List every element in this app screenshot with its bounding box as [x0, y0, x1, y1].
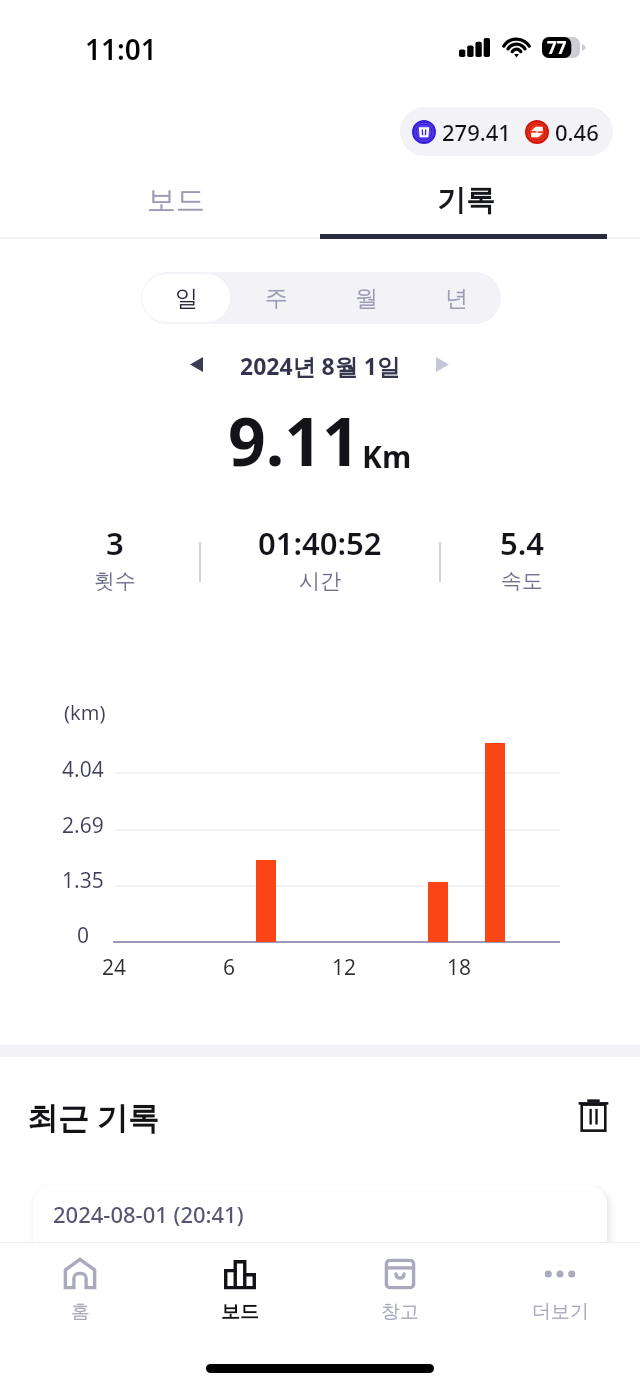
staticText: 홈: [71, 1300, 90, 1324]
staticText: 2.69: [62, 811, 104, 840]
button[interactable]: 보드: [160, 1243, 320, 1337]
staticText: 더보기: [532, 1300, 589, 1324]
staticText: 보드: [147, 182, 205, 219]
button[interactable]: 일: [142, 274, 230, 322]
staticText: 9.11: [228, 395, 360, 485]
staticText: 6: [223, 953, 236, 982]
staticText: 속도: [501, 568, 543, 594]
button[interactable]: Delete records: [570, 1092, 616, 1138]
staticText: 2024년 8월 1일: [240, 350, 400, 381]
staticText: 4.04: [62, 755, 104, 784]
staticText: 12: [332, 953, 357, 982]
staticText: Km: [362, 436, 412, 477]
staticText: 주: [265, 284, 288, 313]
button[interactable]: 월: [322, 274, 410, 322]
staticText: 월: [355, 284, 378, 313]
staticText: 년: [445, 284, 468, 313]
button[interactable]: 홈: [0, 1243, 160, 1337]
button[interactable]: 279.41: [400, 107, 613, 156]
button[interactable]: 년: [412, 274, 500, 322]
button[interactable]: 창고: [320, 1243, 480, 1337]
button[interactable]: Previous day: [176, 344, 216, 384]
staticText: 1.35: [62, 866, 104, 895]
staticText: 24: [102, 953, 127, 982]
staticText: 횟수: [94, 568, 136, 594]
staticText: 01:40:52: [258, 522, 382, 564]
button[interactable]: 주: [232, 274, 320, 322]
staticText: (km): [64, 699, 106, 726]
staticText: 최근 기록: [27, 1096, 160, 1138]
button[interactable]: 2024-08-01 (20:41): [33, 1186, 607, 1266]
button[interactable]: 더보기: [480, 1243, 640, 1337]
staticText: 2024-08-01 (20:41): [53, 1199, 244, 1229]
button[interactable]: 보드: [0, 166, 320, 234]
staticText: 시간: [299, 568, 341, 594]
staticText: 0: [77, 921, 90, 950]
staticText: 보드: [221, 1300, 259, 1324]
staticText: 기록: [437, 182, 495, 219]
staticText: 일: [175, 284, 198, 313]
staticText: 11:01: [85, 30, 157, 68]
staticText: 3: [106, 522, 124, 564]
staticText: 창고: [381, 1300, 419, 1324]
staticText: 18: [447, 953, 472, 982]
staticText: 5.4: [500, 522, 545, 564]
button[interactable]: 기록: [320, 166, 640, 234]
staticText: 77: [547, 36, 567, 59]
button[interactable]: Next day: [422, 344, 462, 384]
staticText: 0.46: [555, 117, 599, 147]
staticText: 279.41: [442, 117, 511, 147]
